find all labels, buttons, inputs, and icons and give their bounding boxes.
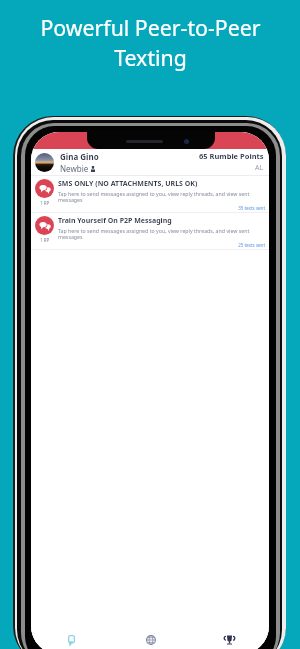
staticText: Powerful Peer-to-Peer Texting bbox=[40, 13, 261, 72]
button[interactable]: Explore bbox=[111, 629, 190, 649]
staticText: 1 RP bbox=[40, 200, 50, 206]
button[interactable]: Leaderboard bbox=[190, 629, 269, 649]
button[interactable]: 1 RP bbox=[31, 213, 269, 250]
staticText: 1 RP bbox=[40, 237, 50, 243]
button[interactable]: Gina Gino bbox=[31, 149, 269, 175]
staticText: AL bbox=[255, 163, 264, 173]
staticText: Gina Gino bbox=[60, 151, 99, 162]
staticText: 65 Rumble Points bbox=[199, 151, 264, 161]
staticText: Train Yourself On P2P Messaging bbox=[58, 216, 172, 226]
staticText: 25 texts sent bbox=[58, 242, 265, 248]
staticText: Tap here to send messages assigned to yo… bbox=[58, 227, 265, 241]
button[interactable]: 1 RP bbox=[31, 176, 269, 213]
staticText: 35 texts sent bbox=[58, 205, 265, 211]
button[interactable]: Messages bbox=[31, 629, 111, 649]
staticText: Newbie bbox=[60, 163, 89, 174]
staticText: Tap here to send messages assigned to yo… bbox=[58, 190, 265, 204]
staticText: SMS ONLY (NO ATTACHMENTS, URLS OK) bbox=[58, 179, 198, 189]
